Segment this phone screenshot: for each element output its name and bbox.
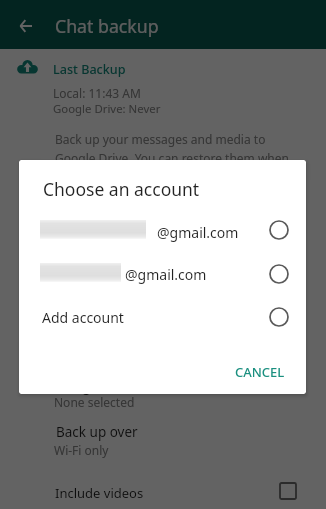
button[interactable] (0, 470, 326, 509)
staticText: Add account (42, 308, 124, 327)
staticText: @gmail.com (125, 265, 207, 284)
button[interactable] (19, 253, 306, 296)
staticText: Local: 11:43 AM (53, 85, 141, 101)
button[interactable]: Back (9, 9, 43, 43)
staticText: @gmail.com (157, 223, 239, 242)
button[interactable] (0, 421, 326, 463)
staticText: None selected (54, 394, 135, 410)
staticText: CANCEL (235, 363, 285, 381)
staticText: Back up over (56, 423, 138, 441)
staticText: Google Account (55, 376, 160, 395)
staticText: Back up your messages and media to Googl… (55, 131, 290, 185)
staticText: Last Backup (53, 61, 126, 78)
staticText: Choose an account (43, 177, 200, 201)
button[interactable] (19, 209, 306, 252)
staticText: Google Drive: Never (53, 101, 161, 117)
staticText: Chat backup (55, 14, 159, 38)
button[interactable] (0, 378, 326, 420)
staticText: Include videos (55, 484, 144, 502)
button[interactable] (19, 296, 306, 339)
button[interactable]: CANCEL (226, 354, 293, 390)
staticText: Wi-Fi only (54, 442, 109, 458)
